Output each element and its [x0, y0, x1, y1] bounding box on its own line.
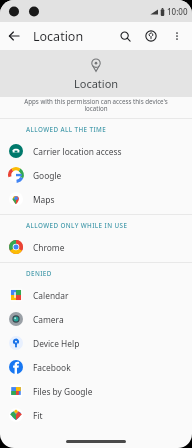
- staticText: Maps: [33, 194, 55, 205]
- button[interactable]: Files by Google: [0, 379, 192, 403]
- button[interactable]: Facebook: [0, 355, 192, 379]
- staticText: Fit: [33, 410, 43, 421]
- button[interactable]: Maps: [0, 187, 192, 211]
- button[interactable]: Camera: [0, 307, 192, 331]
- button[interactable]: Chrome: [0, 235, 192, 259]
- button[interactable]: More options: [164, 23, 190, 49]
- staticText: Camera: [33, 314, 64, 325]
- button[interactable]: Search: [112, 23, 138, 49]
- button[interactable]: Help: [138, 23, 164, 49]
- staticText: Calendar: [33, 290, 69, 301]
- button[interactable]: Device Help: [0, 331, 192, 355]
- staticText: Apps with this permission can access thi…: [16, 97, 176, 113]
- staticText: 10:00: [167, 6, 188, 17]
- staticText: Carrier location access: [33, 146, 122, 157]
- staticText: ALLOWED ALL THE TIME: [26, 125, 107, 134]
- staticText: Google: [33, 170, 62, 181]
- staticText: Files by Google: [33, 386, 93, 397]
- staticText: Location: [33, 28, 84, 45]
- button[interactable]: Calendar: [0, 283, 192, 307]
- button[interactable]: Fit: [0, 403, 192, 427]
- button[interactable]: Carrier location access: [0, 139, 192, 163]
- staticText: Device Help: [33, 338, 80, 349]
- staticText: ALLOWED ONLY WHILE IN USE: [26, 221, 128, 230]
- button[interactable]: Back: [0, 22, 28, 50]
- button[interactable]: Google: [0, 163, 192, 187]
- staticText: Location: [74, 76, 119, 91]
- staticText: Facebook: [33, 362, 71, 373]
- staticText: DENIED: [26, 269, 52, 278]
- staticText: Chrome: [33, 242, 65, 253]
